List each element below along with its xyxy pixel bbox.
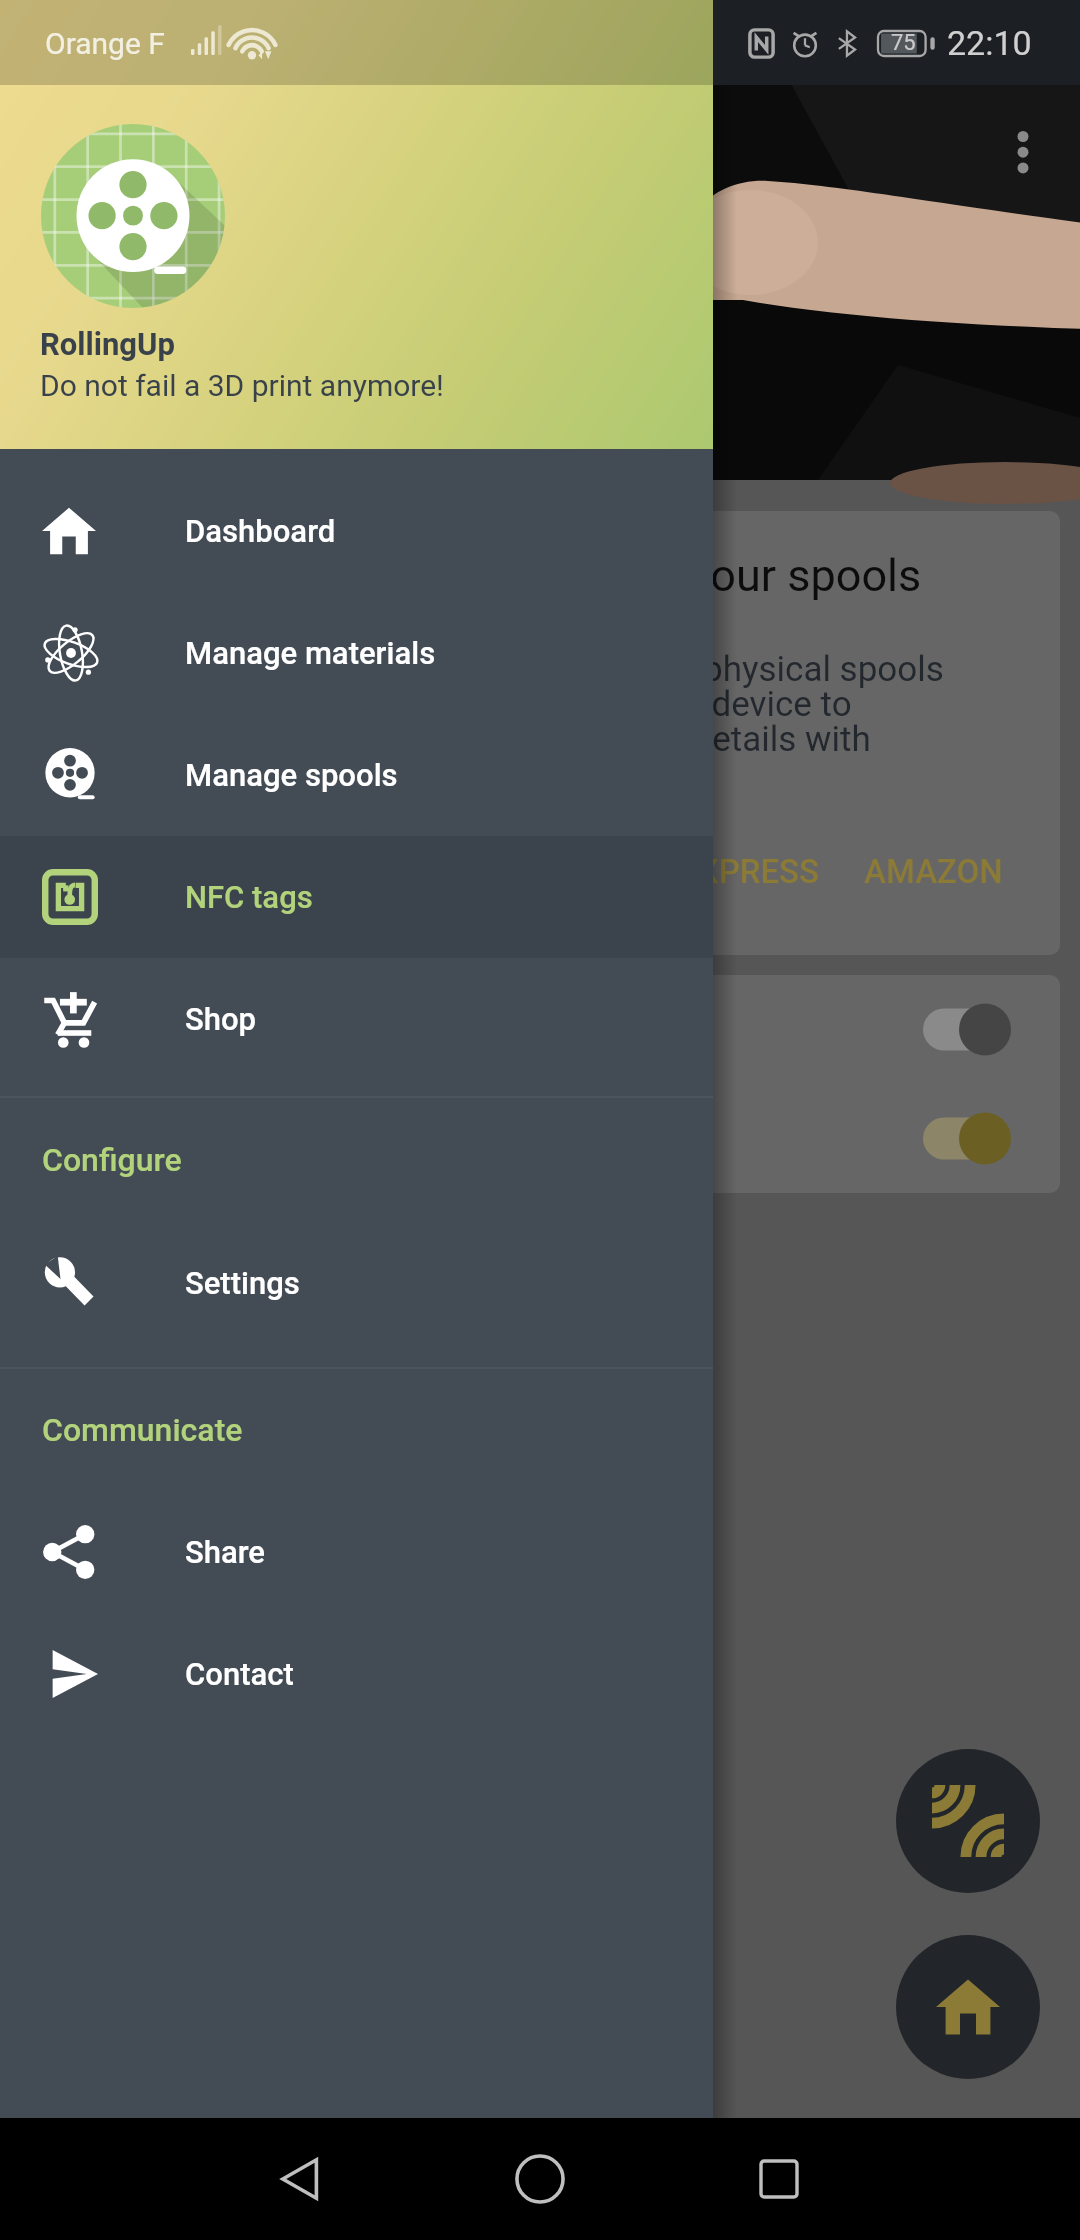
button[interactable]: More options — [975, 104, 1071, 200]
button[interactable]: Manage materials — [0, 592, 713, 714]
button[interactable]: Shop — [0, 958, 713, 1080]
button[interactable] — [20, 1084, 1060, 1193]
button[interactable]: Share — [0, 1491, 713, 1613]
button[interactable]: AMAZON — [842, 836, 1025, 907]
button[interactable]: Home — [896, 1935, 1040, 2079]
button[interactable]: Manage spools — [0, 714, 713, 836]
staticText: Orange F — [45, 26, 165, 61]
button[interactable]: NFC tags — [0, 836, 713, 958]
staticText: Dashboard — [185, 513, 336, 549]
staticText: ALIEXPRESS — [630, 852, 819, 891]
button[interactable]: Contact — [0, 1613, 713, 1735]
staticText: 22:10 — [947, 23, 1032, 63]
staticText: NFC tags — [185, 879, 313, 915]
staticText: Settings — [185, 1265, 300, 1301]
staticText: Manage materials — [185, 635, 436, 671]
staticText: Share — [185, 1534, 265, 1570]
button[interactable]: Recents — [724, 2118, 834, 2240]
staticText: Configure — [42, 1141, 182, 1179]
staticText: Register your physical spools — [490, 649, 944, 690]
staticText: Manage your spools — [516, 549, 922, 602]
staticText: Do not fail a 3D print anymore! — [40, 368, 444, 403]
button[interactable]: ALIEXPRESS — [608, 836, 841, 907]
staticText: Shop — [185, 1001, 257, 1037]
button[interactable]: Settings — [0, 1222, 713, 1344]
staticText: Contact — [185, 1656, 294, 1692]
staticText: 75 — [891, 30, 916, 56]
staticText: RollingUp — [40, 326, 175, 362]
button[interactable]: Home — [485, 2118, 595, 2240]
button[interactable] — [20, 975, 1060, 1084]
staticText: Communicate — [42, 1411, 243, 1449]
staticText: and use your device to — [504, 684, 852, 725]
button[interactable]: Back — [247, 2118, 357, 2240]
button[interactable]: Dashboard — [0, 470, 713, 592]
staticText: Manage spools — [185, 757, 398, 793]
staticText: retrieve their details with — [490, 719, 871, 760]
staticText: AMAZON — [864, 852, 1003, 891]
button[interactable]: Scan NFC tag — [896, 1749, 1040, 1893]
